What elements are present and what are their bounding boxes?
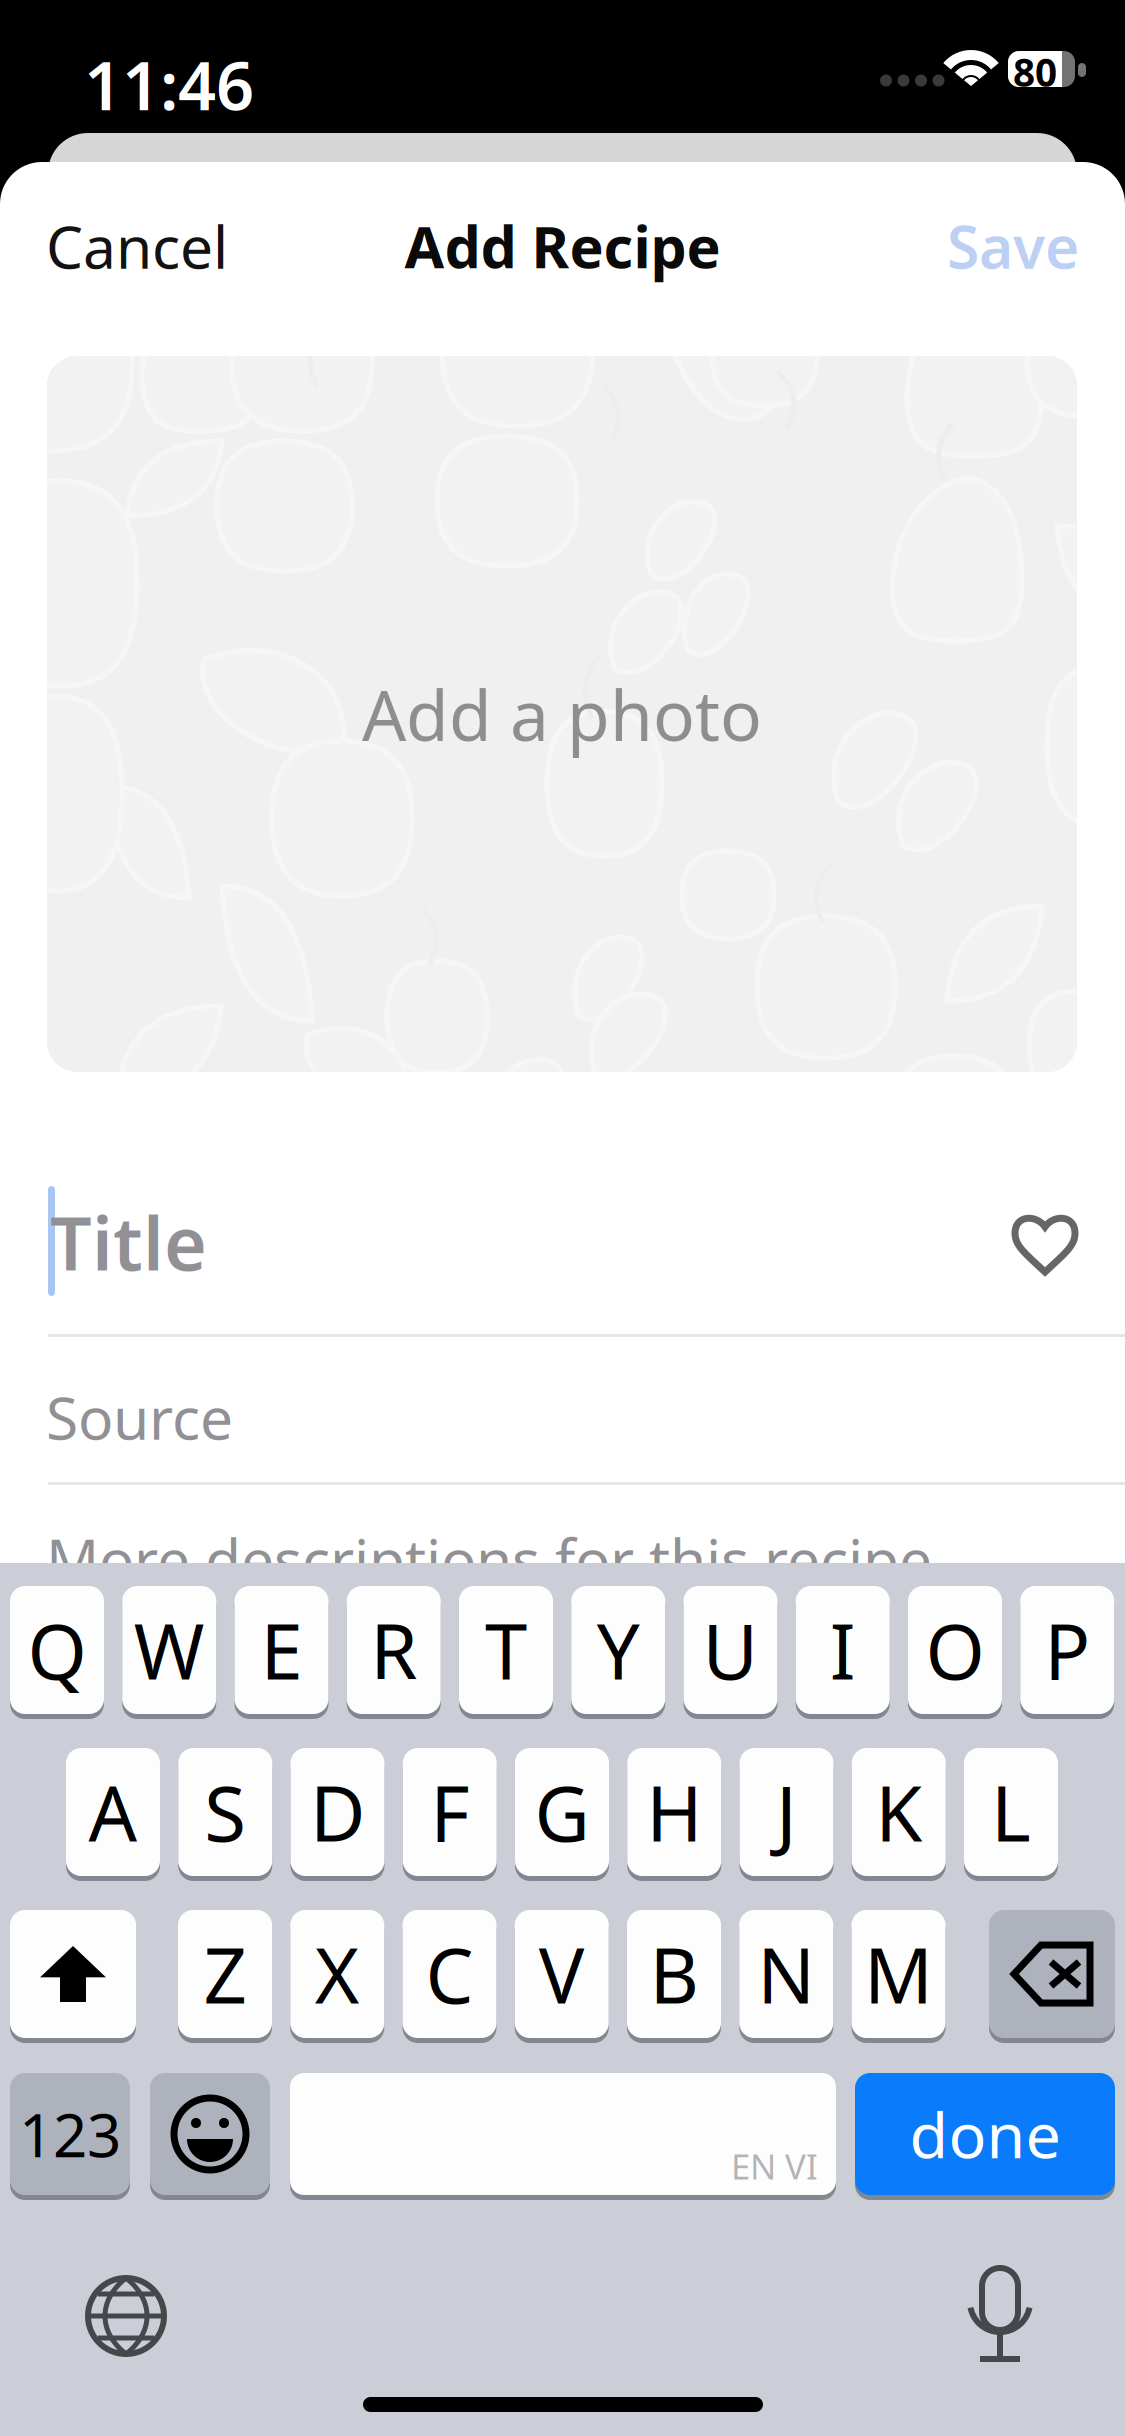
button[interactable]: V <box>515 1910 609 2038</box>
button[interactable]: M <box>851 1910 945 2038</box>
button[interactable]: T <box>459 1586 553 1714</box>
staticText: N <box>757 1923 815 2024</box>
staticText: J <box>776 1761 797 1862</box>
staticText: W <box>134 1599 205 1700</box>
staticText: 80 <box>1013 46 1057 82</box>
staticText: S <box>204 1761 246 1862</box>
staticText: U <box>702 1599 758 1700</box>
button[interactable]: N <box>739 1910 833 2038</box>
button[interactable]: Delete <box>989 1910 1115 2038</box>
staticText: done <box>909 2092 1060 2176</box>
button[interactable]: G <box>515 1748 609 1876</box>
button[interactable]: Q <box>10 1586 104 1714</box>
button[interactable]: X <box>290 1910 384 2038</box>
button[interactable]: S <box>178 1748 272 1876</box>
button[interactable]: Save <box>745 206 1125 286</box>
staticText: A <box>88 1761 137 1862</box>
button[interactable]: I <box>796 1586 890 1714</box>
button[interactable]: Y <box>571 1586 665 1714</box>
staticText: T <box>485 1599 527 1700</box>
button[interactable]: Cancel <box>0 206 380 286</box>
button[interactable]: B <box>627 1910 721 2038</box>
button[interactable]: J <box>739 1748 833 1876</box>
staticText: F <box>430 1761 469 1862</box>
button[interactable]: R <box>347 1586 441 1714</box>
button[interactable]: D <box>290 1748 384 1876</box>
button[interactable]: Dictation <box>962 2266 1038 2370</box>
staticText: Add a photo <box>362 668 762 760</box>
button[interactable]: H <box>627 1748 721 1876</box>
button[interactable]: K <box>852 1748 946 1876</box>
staticText: Cancel <box>46 207 228 285</box>
staticText: Y <box>597 1599 640 1700</box>
button[interactable]: L <box>964 1748 1058 1876</box>
staticText: 123 <box>19 2094 121 2174</box>
button[interactable]: Z <box>178 1910 272 2038</box>
staticText: R <box>370 1599 417 1700</box>
button[interactable]: E <box>234 1586 328 1714</box>
staticText: EN VI <box>731 2143 818 2189</box>
staticText: 11:46 <box>84 40 254 102</box>
button[interactable]: Emoji <box>150 2073 270 2195</box>
staticText: Save <box>947 207 1079 285</box>
staticText: L <box>991 1761 1031 1862</box>
staticText: I <box>830 1599 856 1700</box>
staticText: Z <box>203 1923 246 2024</box>
button[interactable]: O <box>908 1586 1002 1714</box>
button[interactable]: F <box>403 1748 497 1876</box>
button[interactable]: C <box>402 1910 496 2038</box>
staticText: D <box>310 1761 365 1862</box>
staticText: C <box>425 1923 473 2024</box>
staticText: H <box>646 1761 702 1862</box>
button[interactable]: U <box>683 1586 777 1714</box>
button[interactable]: A <box>66 1748 160 1876</box>
button[interactable]: 123 <box>10 2073 130 2195</box>
button[interactable]: Add a photo <box>47 356 1077 1072</box>
button[interactable]: P <box>1020 1586 1114 1714</box>
staticText: G <box>534 1761 589 1862</box>
button[interactable]: space <box>290 2073 836 2195</box>
staticText: Add Recipe <box>404 208 720 284</box>
staticText: More descriptions for this recipe <box>46 1520 932 1582</box>
staticText: V <box>539 1923 585 2024</box>
staticText: B <box>649 1923 698 2024</box>
button[interactable]: Favorite <box>1012 1214 1078 1272</box>
staticText: K <box>875 1761 922 1862</box>
button[interactable]: W <box>122 1586 216 1714</box>
staticText: M <box>864 1923 933 2024</box>
button[interactable]: done <box>855 2073 1115 2195</box>
button[interactable]: Next keyboard <box>84 2274 168 2358</box>
staticText: X <box>315 1923 360 2024</box>
staticText: Q <box>27 1599 86 1700</box>
staticText: P <box>1044 1599 1090 1700</box>
staticText: O <box>925 1599 984 1700</box>
staticText: E <box>260 1599 302 1700</box>
staticText: Source <box>46 1378 233 1444</box>
button[interactable]: Shift <box>10 1910 136 2038</box>
staticText: Title <box>50 1193 207 1291</box>
